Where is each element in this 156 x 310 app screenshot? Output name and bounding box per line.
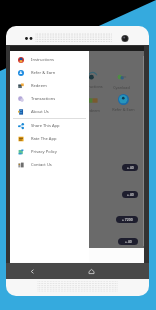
- button[interactable]: Imperial Store (Perfect): [10, 208, 144, 230]
- staticText: Contact Us: [31, 162, 52, 168]
- button[interactable]: Refer & Earn: [110, 94, 136, 112]
- staticText: Redeem: [85, 108, 100, 113]
- button[interactable]: Cyanload: [108, 72, 134, 90]
- staticText: Redeem: [31, 83, 47, 89]
- staticText: + 7200: [122, 217, 133, 222]
- button[interactable]: Instructions: [10, 53, 89, 66]
- button[interactable]: Rate The App: [10, 132, 89, 145]
- button[interactable]: Transactions: [10, 92, 89, 105]
- staticText: Glamour Shop: [14, 165, 40, 170]
- staticText: Refer & Earn: [31, 70, 56, 76]
- staticText: + 40: [127, 192, 134, 197]
- staticText: About Us: [31, 109, 49, 115]
- button[interactable]: Home: [59, 263, 123, 279]
- button[interactable]: Instructions: [79, 71, 105, 89]
- staticText: Cyanload: [113, 85, 130, 90]
- button[interactable]: Systems Solutions: [10, 183, 144, 205]
- staticText: Privacy Policy: [31, 149, 57, 155]
- staticText: Transactions: [31, 96, 56, 102]
- button[interactable]: Rado - Watch Store: [10, 230, 144, 252]
- staticText: Instructions: [81, 84, 103, 89]
- button[interactable]: Redeem: [10, 79, 89, 92]
- staticText: Refer & Earn: [112, 107, 135, 112]
- button[interactable]: Redeem: [79, 95, 105, 113]
- staticText: Share This App: [31, 123, 60, 129]
- button[interactable]: About Us: [10, 105, 89, 118]
- staticText: Rate The App: [31, 136, 57, 142]
- staticText: + 40: [127, 165, 134, 170]
- button[interactable]: Glamour Shop: [10, 156, 144, 178]
- button[interactable]: Privacy Policy: [10, 145, 89, 158]
- button[interactable]: Share This App: [10, 119, 89, 132]
- button[interactable]: Refer & Earn: [10, 66, 89, 79]
- button[interactable]: Contact Us: [10, 158, 89, 171]
- staticText: Instructions: [31, 57, 55, 63]
- staticText: + 40: [125, 239, 132, 244]
- button[interactable]: Back: [6, 263, 59, 279]
